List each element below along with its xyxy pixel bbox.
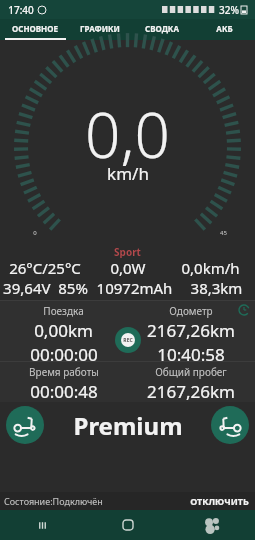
staticText: СВОДКА [145, 23, 179, 34]
button[interactable]: Home [85, 510, 170, 540]
staticText: 2167,26km [147, 319, 235, 342]
staticText: 10972mAh [91, 278, 178, 298]
staticText: 26°C/25°C [0, 258, 90, 278]
staticText: Одометр [169, 304, 213, 318]
staticText: ОСНОВНОЕ [12, 23, 58, 34]
staticText: ГРАФИКИ [80, 23, 120, 34]
button[interactable]: СВОДКА [131, 19, 193, 38]
staticText: 0,00km [34, 319, 93, 342]
staticText: ОТКЛЮЧИТЬ [190, 495, 249, 507]
staticText: 2167,26km [147, 380, 235, 402]
staticText: Состояние:Подключён [4, 495, 103, 507]
button[interactable]: Recents [0, 510, 85, 540]
staticText: 39,64V 85% [0, 278, 91, 298]
staticText: Время работы [29, 365, 99, 379]
staticText: 0,0 [85, 92, 170, 176]
button[interactable]: АКБ [193, 19, 255, 38]
staticText: 32% [219, 3, 239, 17]
button[interactable]: Reset trip [237, 303, 251, 317]
staticText: 17:40 [8, 3, 34, 17]
staticText: REC [123, 337, 133, 344]
staticText: 10:40:58 [157, 343, 225, 361]
staticText: Premium [73, 409, 183, 442]
staticText: 45 [220, 229, 227, 237]
staticText: 0,0km/h [166, 258, 255, 278]
button[interactable]: ОСНОВНОЕ [0, 19, 69, 38]
staticText: Поездка [43, 304, 84, 318]
staticText: Общий пробег [155, 365, 227, 379]
button[interactable]: Scooter left [6, 406, 44, 444]
button[interactable]: Premium [44, 402, 211, 448]
staticText: 00:00:00 [30, 343, 98, 361]
button[interactable]: Back [170, 510, 255, 540]
staticText: 0,0W [90, 258, 166, 278]
button[interactable]: Scooter right [211, 406, 249, 444]
staticText: Sport [114, 245, 141, 258]
staticText: АКБ [216, 23, 233, 34]
staticText: 38,3km [178, 278, 255, 298]
button[interactable]: ОТКЛЮЧИТЬ [188, 495, 251, 507]
staticText: 00:00:48 [30, 380, 98, 402]
button[interactable]: ГРАФИКИ [69, 19, 131, 38]
button[interactable]: Record [115, 327, 141, 353]
staticText: km/h [107, 162, 149, 185]
staticText: 0 [33, 229, 37, 237]
